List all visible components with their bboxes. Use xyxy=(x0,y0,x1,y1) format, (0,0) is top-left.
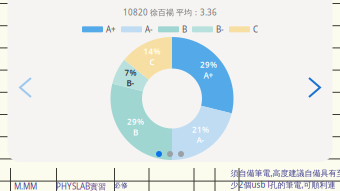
staticText: 須自備筆電,高度建議自備具有至 xyxy=(230,168,340,178)
staticText: 21% xyxy=(192,124,209,135)
staticText: A- xyxy=(196,135,204,145)
staticText: A- xyxy=(145,24,153,35)
staticText: 29% xyxy=(200,59,217,70)
staticText: PHYSLAB實習 xyxy=(56,181,106,191)
staticText: C xyxy=(253,24,258,35)
staticText: B- xyxy=(216,24,224,35)
staticText: 必修 xyxy=(114,181,128,189)
staticText: B xyxy=(182,24,187,35)
staticText: 7% xyxy=(125,67,137,78)
staticText: 10820 徐百禓 平均：3.36 xyxy=(123,7,217,18)
staticText: A+ xyxy=(203,70,213,81)
button[interactable]: Next student xyxy=(298,67,331,108)
staticText: 29% xyxy=(127,116,144,127)
button[interactable]: Previous student xyxy=(9,67,42,108)
staticText: A+ xyxy=(106,24,116,35)
staticText: B xyxy=(133,127,138,138)
staticText: 少2個usb l孔的筆電,可順利連 xyxy=(230,179,335,190)
staticText: B- xyxy=(127,78,135,88)
staticText: C xyxy=(150,57,155,67)
staticText: 14% xyxy=(144,46,161,57)
staticText: M.MM xyxy=(14,181,37,191)
